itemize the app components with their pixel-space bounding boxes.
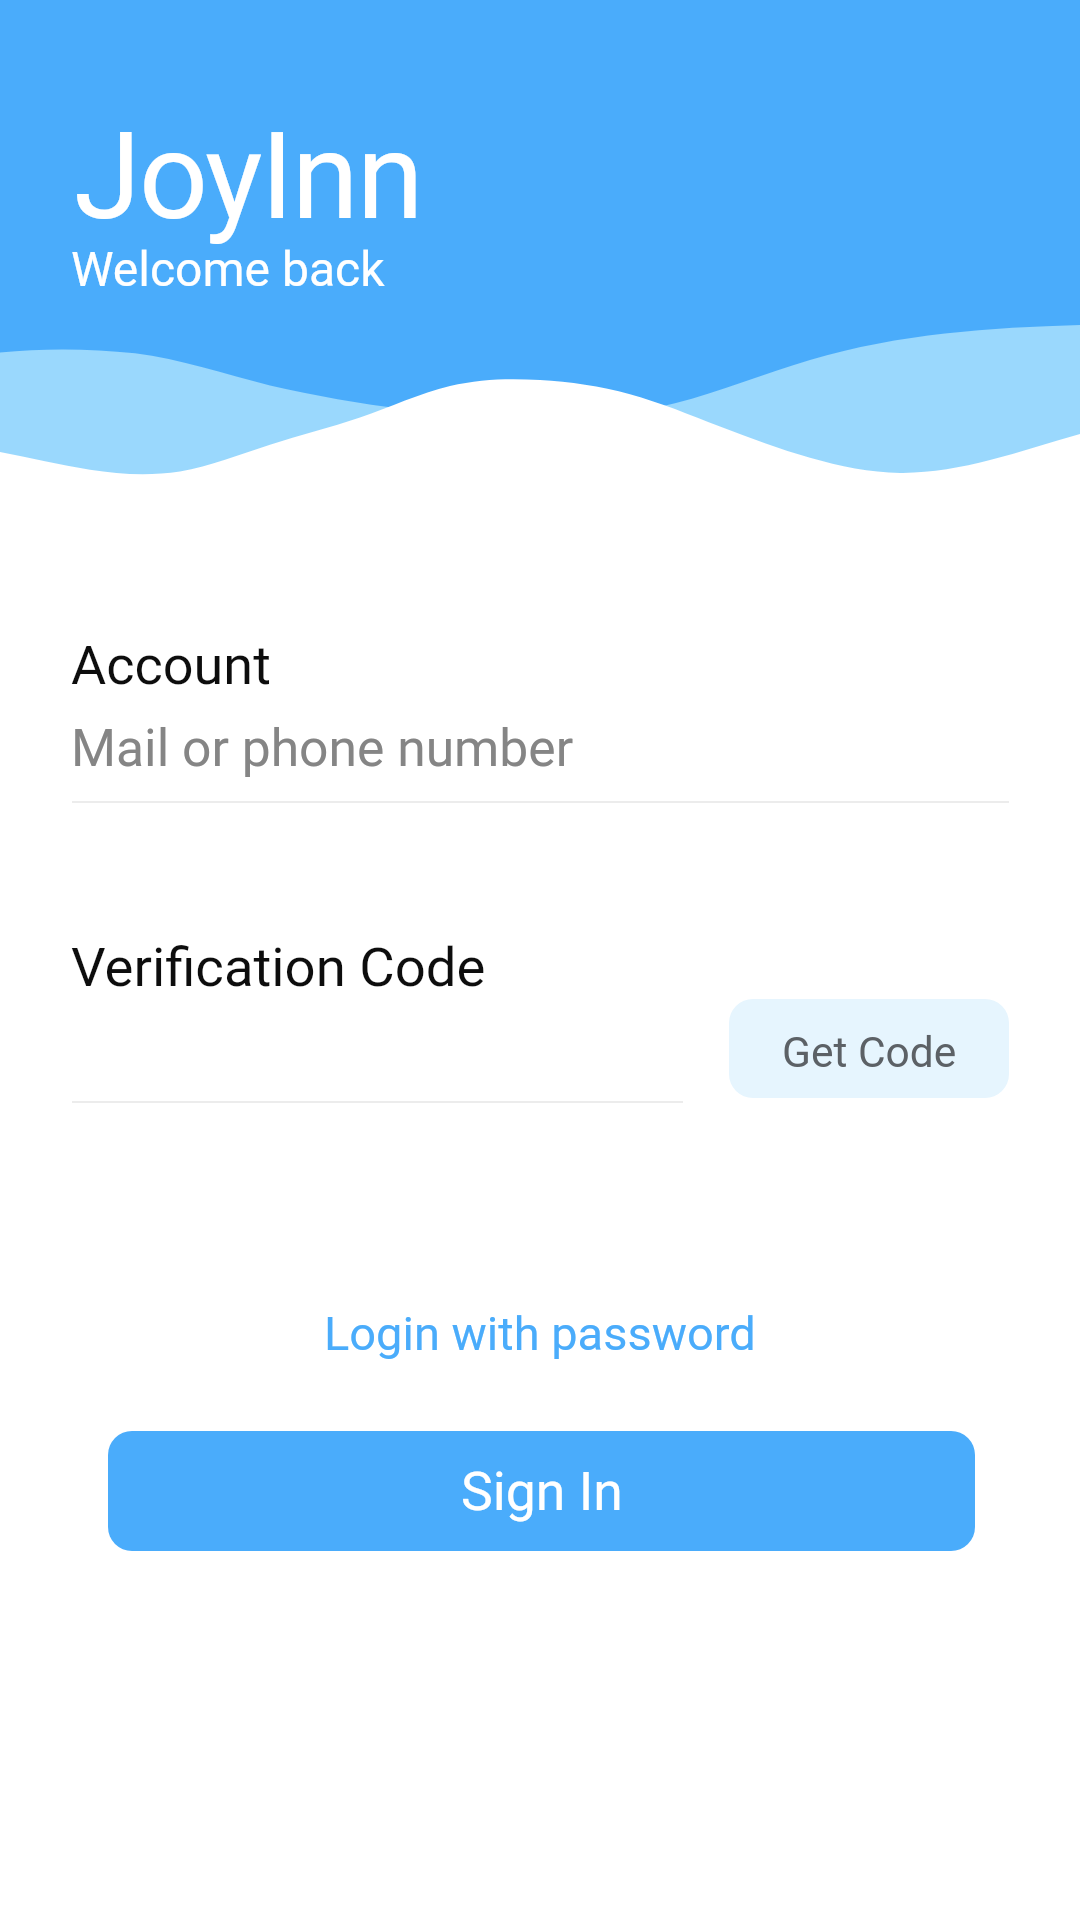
button[interactable]: Account input, mail or phone number — [72, 705, 1009, 801]
button[interactable]: Get Code — [729, 999, 1009, 1098]
staticText: Mail or phone number — [71, 718, 574, 778]
staticText: JoyInn — [74, 106, 422, 248]
staticText: Login with password — [324, 1306, 756, 1361]
staticText: Get Code — [782, 1028, 957, 1078]
staticText: Account — [71, 634, 271, 697]
button[interactable]: Sign In — [108, 1431, 975, 1551]
button[interactable]: Login with password — [324, 1306, 756, 1361]
staticText: Welcome back — [71, 241, 385, 297]
staticText: Verification Code — [71, 935, 486, 999]
staticText: Sign In — [461, 1460, 623, 1523]
